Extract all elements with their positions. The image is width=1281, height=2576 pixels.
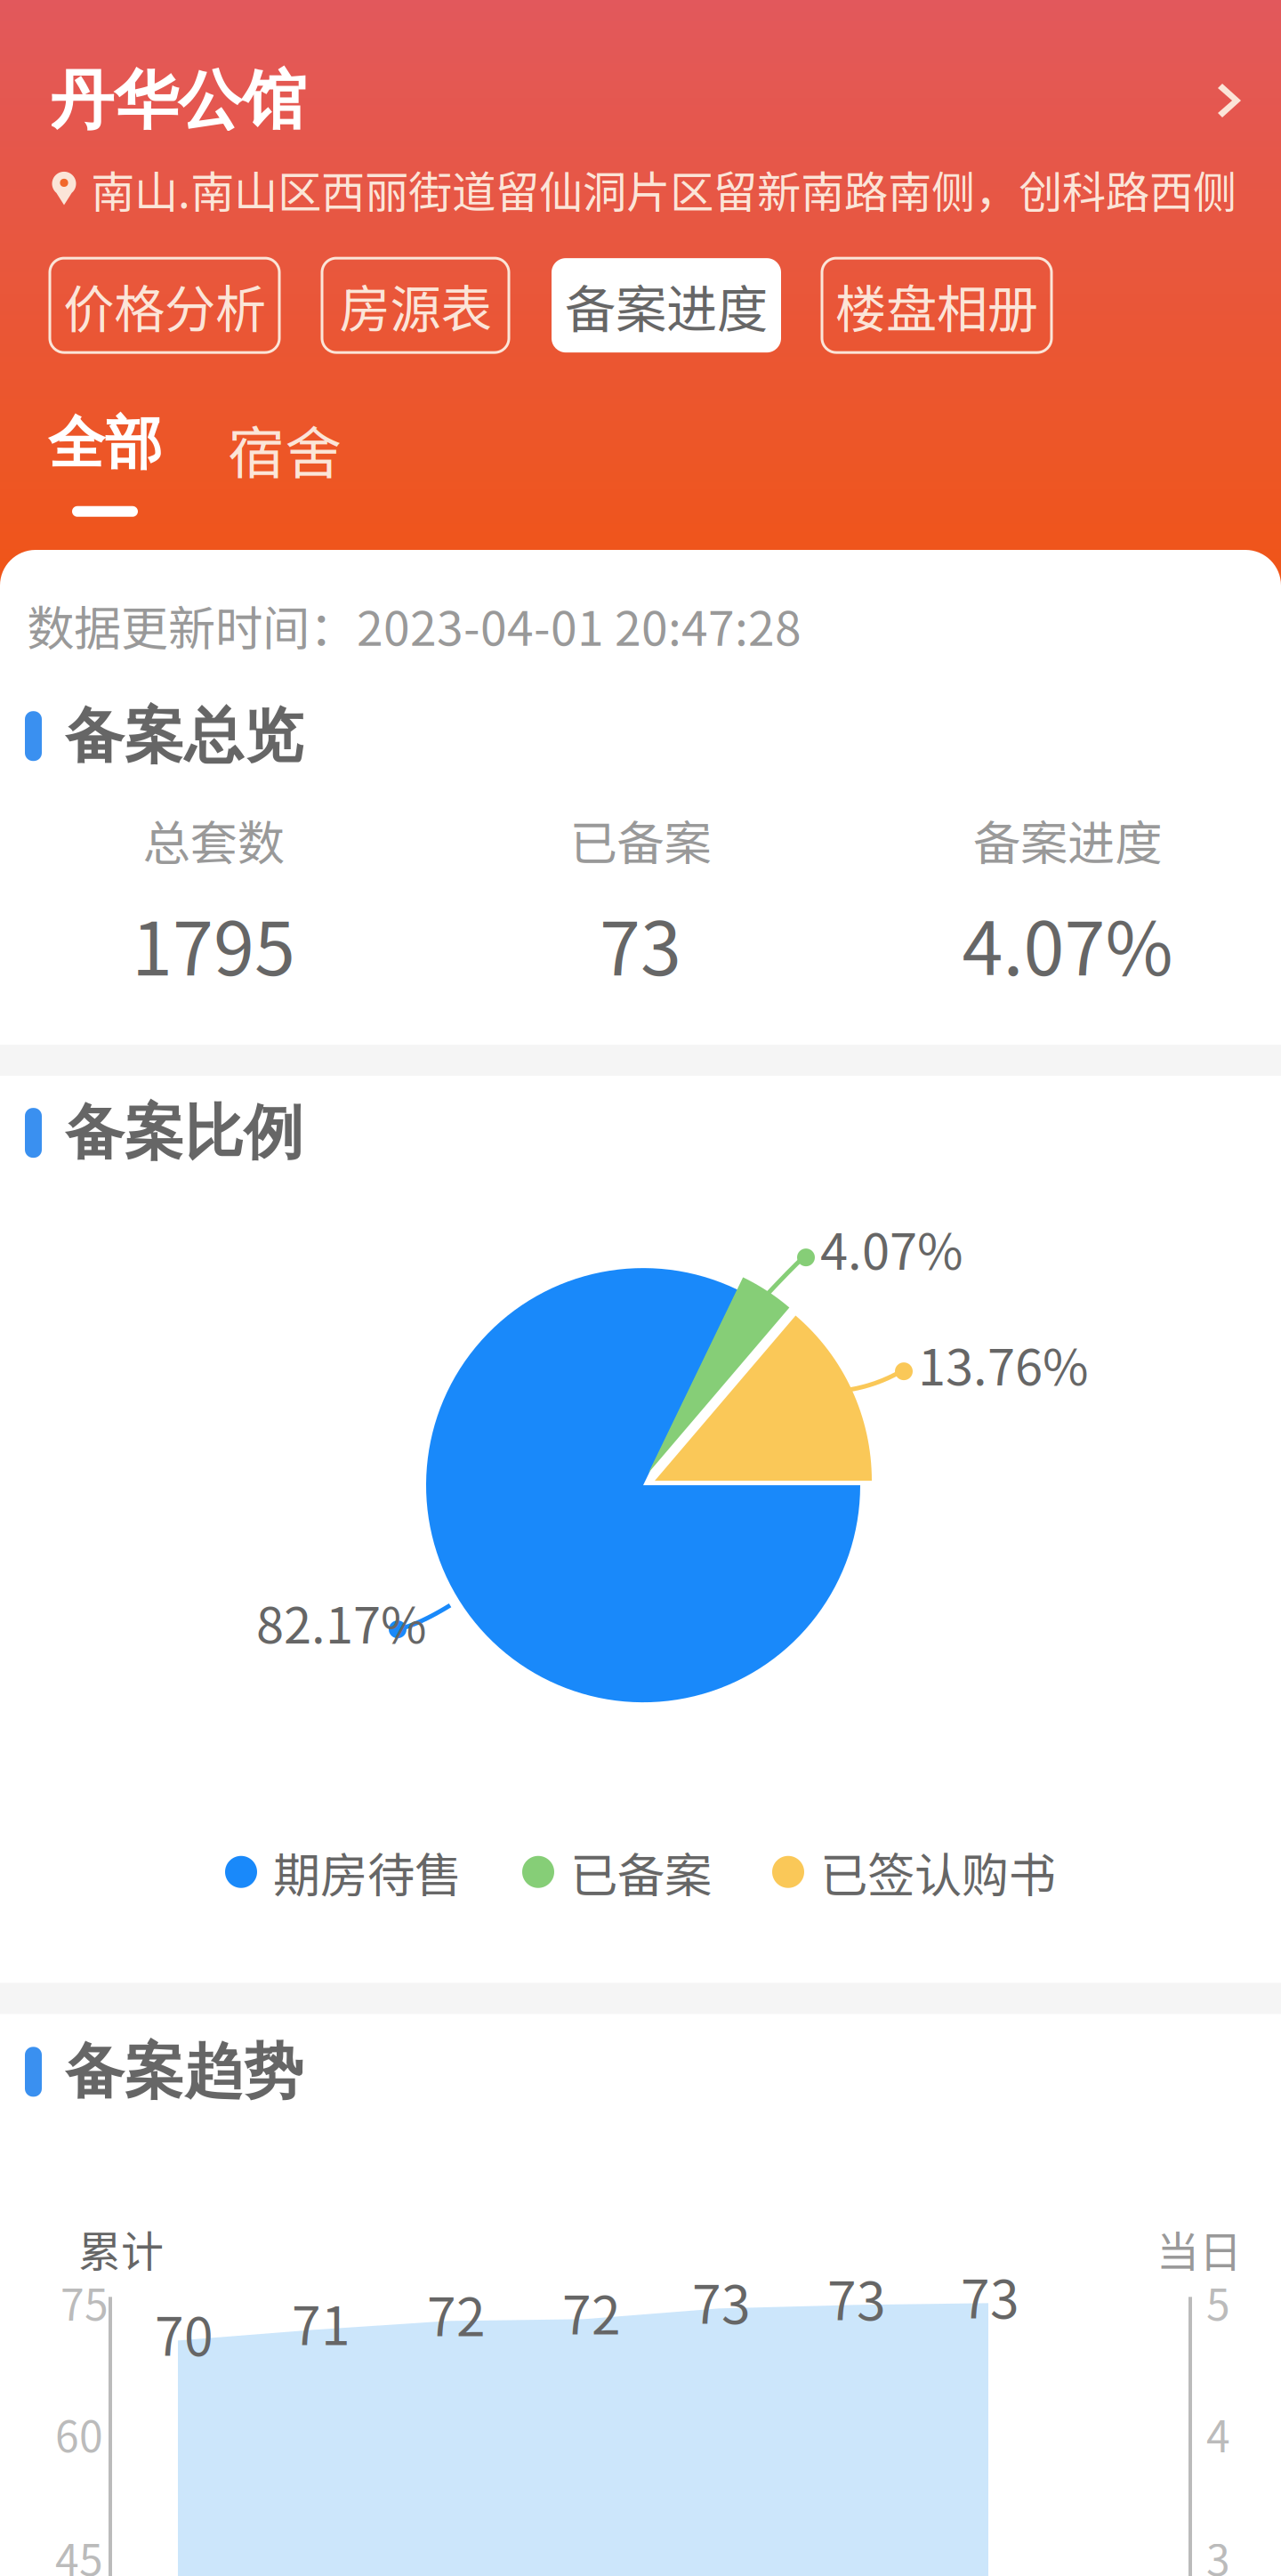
staticText: 备案进度 <box>973 805 1162 874</box>
staticText: 75 <box>60 2271 109 2333</box>
staticText: 3 <box>1206 2526 1230 2576</box>
staticText: 房源表 <box>339 268 491 342</box>
staticText: 宿舍 <box>228 408 342 490</box>
staticText: 已备案 <box>570 1838 712 1906</box>
staticText: 72 <box>427 2276 486 2351</box>
staticText: 73 <box>600 890 681 997</box>
button[interactable]: 备案进度 <box>552 258 781 352</box>
staticText: 73 <box>961 2258 1019 2333</box>
staticText: 总套数 <box>143 805 284 874</box>
staticText: 45 <box>55 2526 103 2576</box>
staticText: 4 <box>1206 2403 1230 2465</box>
staticText: 数据更新时间：2023-04-01 20:47:28 <box>27 591 802 660</box>
staticText: 备案趋势 <box>65 2034 303 2109</box>
staticText: 71 <box>292 2284 350 2360</box>
staticText: 备案比例 <box>65 1095 303 1170</box>
button[interactable]: 楼盘相册 <box>822 258 1051 352</box>
staticText: 备案进度 <box>565 268 768 342</box>
staticText: 期房待售 <box>273 1838 462 1906</box>
staticText: 全部 <box>48 408 162 479</box>
staticText: 73 <box>827 2259 886 2335</box>
button[interactable]: 宿舍 <box>228 408 342 527</box>
staticText: 楼盘相册 <box>835 268 1038 342</box>
staticText: 已备案 <box>570 805 711 874</box>
button[interactable]: 项目详情 <box>1217 80 1244 121</box>
staticText: 70 <box>155 2295 213 2371</box>
staticText: 已签认购书 <box>820 1838 1056 1906</box>
staticText: 丹华公馆 <box>50 61 306 141</box>
button[interactable]: 价格分析 <box>50 258 279 352</box>
staticText: 60 <box>55 2403 103 2465</box>
staticText: 73 <box>692 2263 751 2339</box>
staticText: 82.17% <box>256 1586 427 1658</box>
staticText: 备案总览 <box>65 699 303 773</box>
staticText: 13.76% <box>918 1328 1089 1400</box>
staticText: 累计 <box>78 2218 164 2280</box>
staticText: 价格分析 <box>63 268 266 342</box>
staticText: 1795 <box>132 890 295 997</box>
button[interactable]: 全部 <box>48 408 162 517</box>
button[interactable]: 房源表 <box>322 258 509 352</box>
staticText: 4.07% <box>820 1212 963 1284</box>
staticText: 当日 <box>1156 2218 1242 2280</box>
staticText: 南山.南山区西丽街道留仙洞片区留新南路南侧，创科路西侧 <box>91 157 1237 221</box>
staticText: 4.07% <box>962 890 1173 997</box>
staticText: 5 <box>1206 2271 1230 2333</box>
staticText: 72 <box>562 2274 621 2349</box>
